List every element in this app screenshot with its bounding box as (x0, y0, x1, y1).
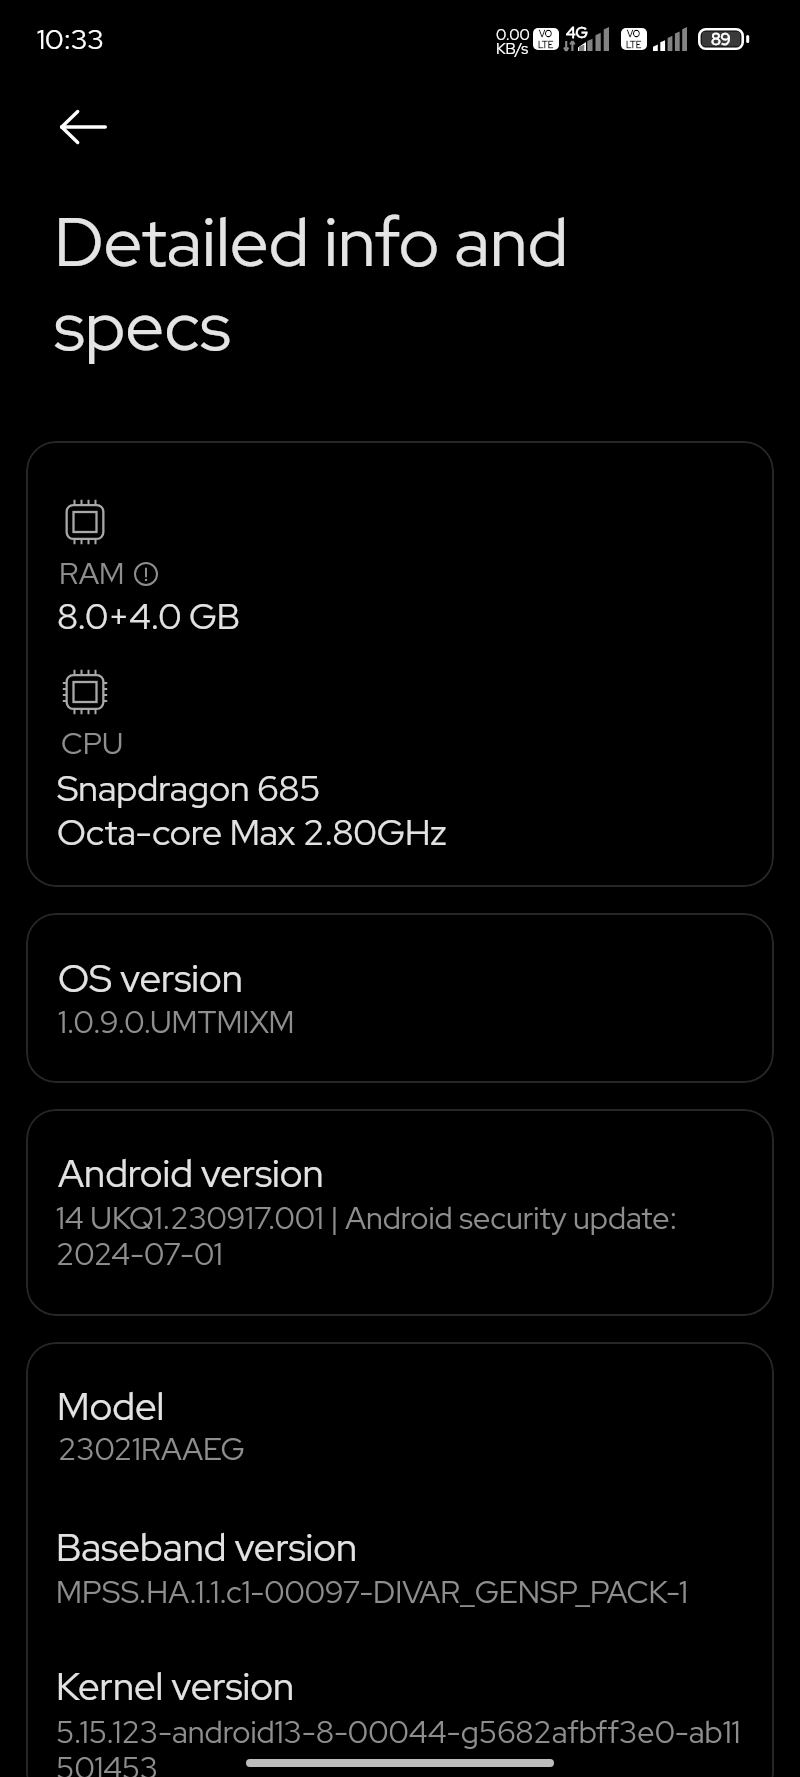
staticText: 4G (566, 22, 588, 42)
staticText: Snapdragon 685 Octa-core Max 2.80GHz (57, 767, 447, 855)
staticText: 8.0+4.0 GB (57, 594, 240, 640)
staticText: OS version (58, 954, 243, 1004)
staticText: VO (539, 28, 553, 40)
button[interactable]: Back (53, 97, 113, 157)
staticText: 89 (711, 28, 731, 49)
staticText: RAM (59, 554, 125, 593)
button[interactable]: RAM (26, 441, 774, 887)
button[interactable]: Android version (26, 1109, 774, 1316)
staticText: Detailed info and specs (54, 202, 569, 370)
staticText: 14 UKQ1.230917.001 | Android security up… (56, 1201, 678, 1273)
staticText: CPU (61, 724, 124, 763)
button[interactable]: Model (26, 1342, 774, 1777)
staticText: Model (57, 1382, 165, 1432)
staticText: 10:33 (37, 21, 104, 57)
staticText: LTE (538, 39, 554, 50)
staticText: VO (627, 28, 641, 40)
staticText: KB/s (496, 38, 529, 58)
button[interactable]: OS version (26, 913, 774, 1083)
staticText: 0.00 (496, 24, 530, 44)
staticText: 23021RAAEG (58, 1429, 245, 1469)
staticText: MPSS.HA.1.1.c1-00097-DIVAR_GENSP_PACK-1 (56, 1572, 688, 1612)
staticText: LTE (626, 39, 642, 50)
staticText: Android version (58, 1149, 324, 1199)
staticText: Baseband version (56, 1523, 358, 1573)
staticText: Kernel version (56, 1662, 295, 1712)
staticText: 1.0.9.0.UMTMIXM (58, 1002, 295, 1042)
staticText: 5.15.123-android13-8-00044-g5682afbff3e0… (56, 1715, 741, 1777)
